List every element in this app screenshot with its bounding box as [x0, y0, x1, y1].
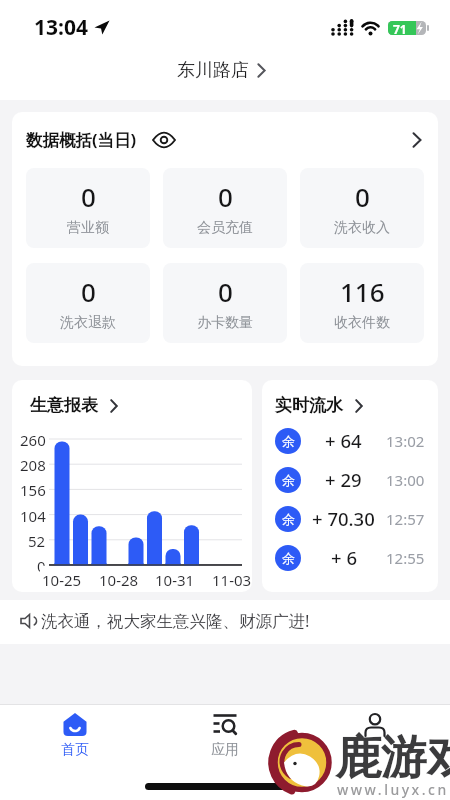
button[interactable]: 0 — [26, 168, 150, 248]
staticText: 洗衣退款 — [60, 314, 116, 332]
staticText: 12:55 — [386, 548, 425, 568]
staticText: 13:00 — [386, 470, 425, 490]
staticText: 208 — [20, 455, 46, 475]
button[interactable]: 0 — [163, 168, 287, 248]
staticText: 实时流水 — [275, 395, 343, 416]
staticText: 0 — [81, 179, 96, 214]
staticText: 71 — [393, 21, 407, 35]
staticText: www.luyx.cn — [337, 780, 449, 799]
button[interactable]: 0 — [300, 168, 424, 248]
staticText: 11-03 — [212, 570, 252, 590]
staticText: + 29 — [325, 467, 362, 492]
staticText: 52 — [28, 531, 46, 551]
staticText: 10-28 — [99, 570, 139, 590]
staticText: 0 — [81, 274, 96, 309]
staticText: 0 — [218, 179, 233, 214]
staticText: 12:57 — [386, 509, 425, 529]
staticText: 鹿游戏 — [335, 729, 450, 787]
staticText: 应用 — [211, 741, 239, 759]
staticText: 13:02 — [386, 431, 425, 451]
staticText: 收衣件数 — [334, 314, 390, 332]
staticText: 会员充值 — [197, 219, 253, 237]
staticText: 东川路店 — [177, 59, 249, 82]
staticText: 生意报表 — [30, 395, 98, 416]
staticText: 0 — [37, 556, 46, 576]
staticText: 156 — [20, 480, 46, 500]
staticText: 0 — [355, 179, 370, 214]
staticText: 10-25 — [42, 570, 82, 590]
staticText: 0 — [218, 274, 233, 309]
staticText: 数据概括(当日) — [26, 128, 137, 151]
button[interactable]: 洗衣通，祝大家生意兴隆、财源广进! — [0, 600, 450, 641]
staticText: + 6 — [331, 545, 357, 570]
staticText: 104 — [20, 506, 46, 526]
staticText: 13:04 — [34, 13, 88, 42]
staticText: + 64 — [325, 428, 362, 453]
button[interactable]: 余 — [275, 460, 425, 499]
staticText: 余 — [282, 433, 295, 449]
button[interactable]: 东川路店 — [177, 59, 266, 82]
button[interactable]: 余 — [275, 499, 425, 538]
staticText: 余 — [282, 472, 295, 488]
staticText: 营业额 — [67, 219, 109, 237]
button[interactable]: 0 — [26, 263, 150, 343]
staticText: 办卡数量 — [197, 314, 253, 332]
staticText: 首页 — [61, 741, 89, 759]
staticText: 余 — [282, 511, 295, 527]
button[interactable]: 余 — [275, 421, 425, 460]
staticText: 余 — [282, 550, 295, 566]
button[interactable] — [300, 713, 450, 743]
button[interactable]: 数据概括(当日) — [26, 128, 424, 151]
button[interactable]: 116 — [300, 263, 424, 343]
staticText: 洗衣收入 — [334, 219, 390, 237]
button[interactable]: 0 — [163, 263, 287, 343]
button[interactable]: 首页 — [0, 713, 150, 759]
button[interactable]: 应用 — [150, 713, 300, 759]
button[interactable]: 生意报表 — [12, 380, 252, 592]
staticText: + 70.30 — [312, 506, 375, 531]
staticText: 10-31 — [155, 570, 195, 590]
button[interactable]: 实时流水 — [275, 395, 363, 416]
staticText: 洗衣通，祝大家生意兴隆、财源广进! — [41, 609, 310, 632]
staticText: 260 — [20, 430, 46, 450]
button[interactable]: 余 — [275, 538, 425, 577]
staticText: 116 — [340, 274, 385, 309]
